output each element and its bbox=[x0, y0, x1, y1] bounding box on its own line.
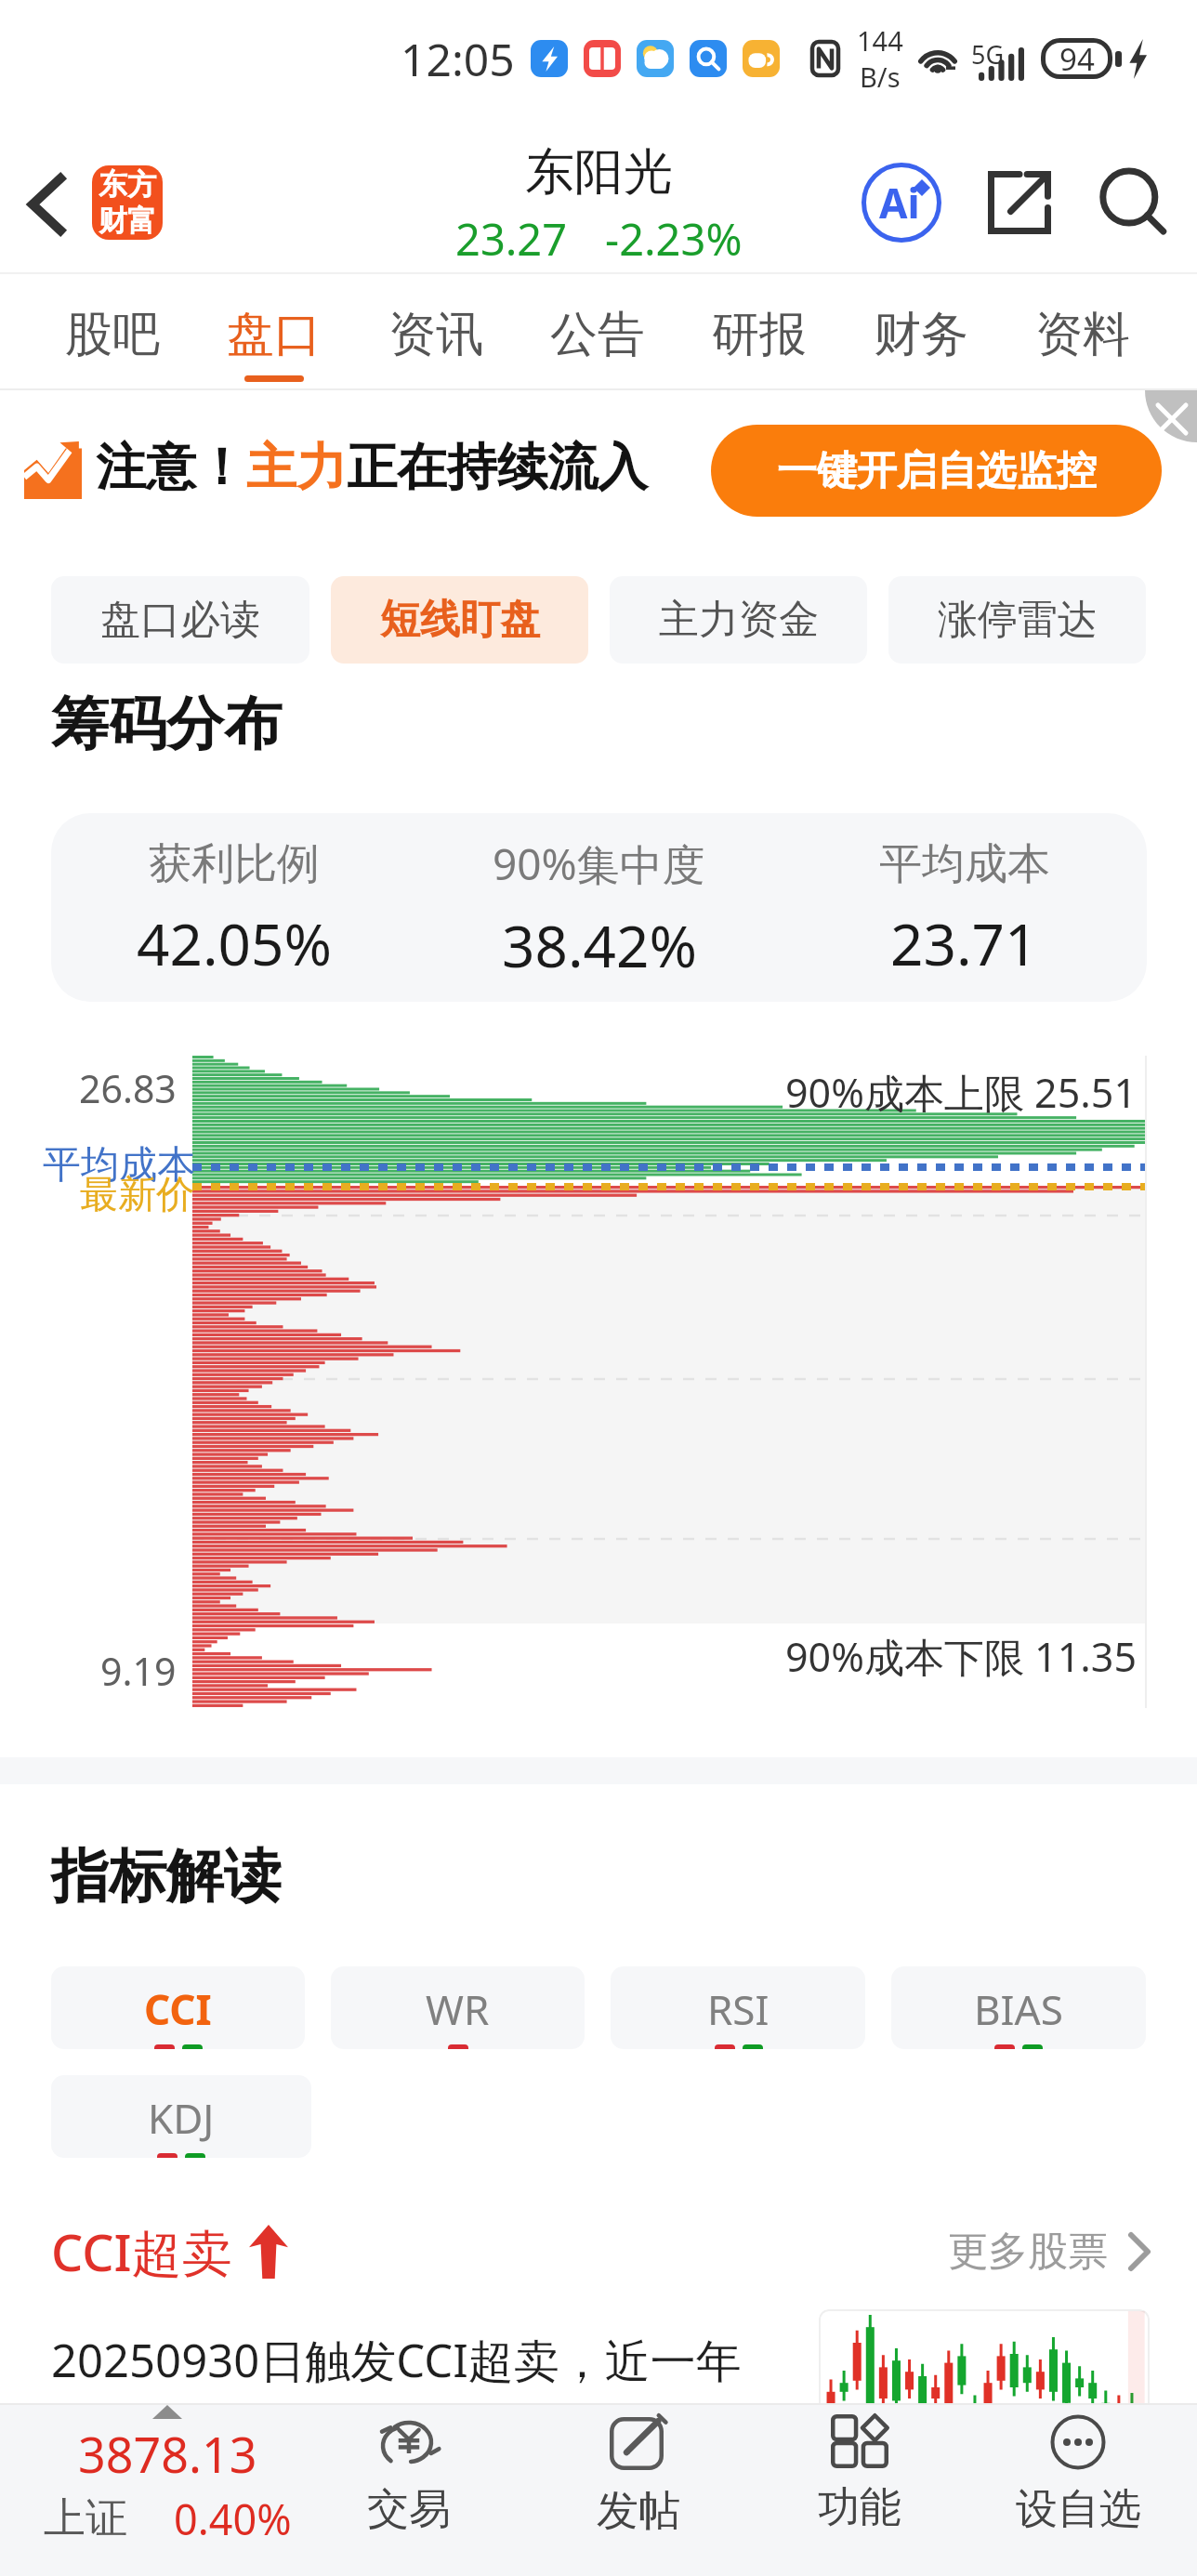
staticText: 26.83 bbox=[79, 1062, 177, 1114]
staticText: 38.42% bbox=[502, 906, 697, 984]
button[interactable]: Share bbox=[969, 152, 1070, 253]
staticText: 财富 bbox=[99, 203, 156, 239]
staticText: 股吧 bbox=[65, 305, 160, 364]
button[interactable]: 资讯 bbox=[355, 274, 517, 388]
staticText: RSI bbox=[707, 1981, 769, 2037]
staticText: -2.23% bbox=[605, 209, 743, 269]
staticText: 设自选 bbox=[1016, 2483, 1141, 2536]
staticText: 9.19 bbox=[100, 1645, 177, 1697]
staticText: 研报 bbox=[712, 305, 807, 364]
button[interactable]: 研报 bbox=[678, 274, 840, 388]
staticText: 5G bbox=[971, 37, 1005, 72]
button[interactable]: BIAS bbox=[891, 1966, 1146, 2049]
staticText: 东阳光 bbox=[525, 141, 673, 204]
button[interactable]: 财务 bbox=[840, 274, 1002, 388]
button[interactable]: 短线盯盘 bbox=[331, 576, 588, 664]
staticText: 23.71 bbox=[890, 904, 1038, 982]
button[interactable]: AI assistant bbox=[850, 151, 953, 254]
button[interactable]: 股吧 bbox=[32, 274, 193, 388]
staticText: 90%集中度 bbox=[493, 835, 705, 893]
staticText: 上证 bbox=[44, 2492, 127, 2545]
button[interactable]: Back bbox=[2, 160, 91, 249]
button[interactable]: 盘口必读 bbox=[51, 576, 309, 664]
staticText: 144 bbox=[857, 22, 903, 59]
button[interactable]: KDJ bbox=[51, 2075, 311, 2158]
staticText: 资料 bbox=[1035, 305, 1130, 364]
staticText: 主力 bbox=[246, 436, 347, 499]
staticText: 筹码分布 bbox=[51, 688, 282, 760]
staticText: 财务 bbox=[874, 305, 968, 364]
button[interactable]: Close ad bbox=[1093, 390, 1197, 442]
staticText: 90%成本下限 11.35 bbox=[785, 1629, 1138, 1684]
button[interactable]: 设自选 bbox=[1004, 2409, 1152, 2536]
staticText: 3878.13 bbox=[78, 2421, 257, 2487]
staticText: 盘口必读 bbox=[100, 595, 260, 645]
staticText: 更多股票 bbox=[948, 2227, 1108, 2277]
button[interactable]: 盘口 bbox=[193, 274, 355, 388]
staticText: 指标解读 bbox=[51, 1840, 282, 1912]
staticText: 42.05% bbox=[137, 904, 332, 982]
staticText: Ai bbox=[879, 175, 920, 230]
button[interactable]: 更多股票 bbox=[948, 2227, 1151, 2277]
staticText: B/s bbox=[860, 59, 901, 95]
staticText: KDJ bbox=[148, 2090, 215, 2146]
staticText: 获利比例 bbox=[149, 837, 320, 891]
staticText: 0.40% bbox=[174, 2491, 292, 2547]
staticText: 注意！ bbox=[96, 436, 246, 499]
staticText: 公告 bbox=[550, 305, 645, 364]
staticText: 12:05 bbox=[401, 29, 515, 89]
button[interactable]: 资料 bbox=[1002, 274, 1164, 388]
staticText: CCI bbox=[144, 1981, 212, 2037]
button[interactable]: 功能 bbox=[785, 2409, 934, 2534]
staticText: 平均成本 bbox=[43, 1141, 195, 1189]
staticText: 功能 bbox=[818, 2481, 901, 2534]
staticText: 涨停雷达 bbox=[938, 595, 1098, 645]
staticText: 23.27 bbox=[455, 209, 568, 269]
staticText: 最新价 bbox=[80, 1171, 194, 1219]
button[interactable]: 主力资金 bbox=[610, 576, 867, 664]
button[interactable]: East Money home bbox=[92, 165, 163, 240]
button[interactable]: 交易 bbox=[335, 2409, 483, 2536]
button[interactable]: 3878.13 bbox=[5, 2405, 330, 2547]
staticText: CCI超卖 bbox=[51, 2217, 232, 2286]
staticText: 短线盯盘 bbox=[380, 595, 540, 645]
staticText: 发帖 bbox=[597, 2485, 680, 2538]
staticText: 94 bbox=[1059, 38, 1095, 79]
button[interactable]: CCI bbox=[51, 1966, 305, 2049]
button[interactable]: 发帖 bbox=[564, 2409, 713, 2538]
staticText: 一键开启自选监控 bbox=[777, 446, 1097, 496]
staticText: 90%成本上限 25.51 bbox=[785, 1065, 1138, 1120]
staticText: 主力资金 bbox=[659, 595, 819, 645]
button[interactable]: 公告 bbox=[517, 274, 678, 388]
button[interactable]: 涨停雷达 bbox=[888, 576, 1146, 664]
staticText: 20250930日触发CCI超卖，近一年 bbox=[51, 2329, 742, 2391]
staticText: 资讯 bbox=[388, 305, 483, 364]
staticText: 东方 bbox=[99, 166, 156, 203]
staticText: 交易 bbox=[367, 2483, 451, 2536]
button[interactable]: WR bbox=[331, 1966, 585, 2049]
staticText: 盘口 bbox=[227, 305, 322, 364]
staticText: BIAS bbox=[974, 1981, 1063, 2037]
staticText: 平均成本 bbox=[879, 837, 1050, 891]
button[interactable]: CCI超卖 bbox=[51, 2217, 288, 2286]
button[interactable]: RSI bbox=[611, 1966, 865, 2049]
staticText: WR bbox=[426, 1981, 490, 2037]
button[interactable]: 一键开启自选监控 bbox=[711, 425, 1162, 517]
staticText: 正在持续流入 bbox=[347, 436, 648, 499]
button[interactable]: Search bbox=[1083, 151, 1183, 252]
